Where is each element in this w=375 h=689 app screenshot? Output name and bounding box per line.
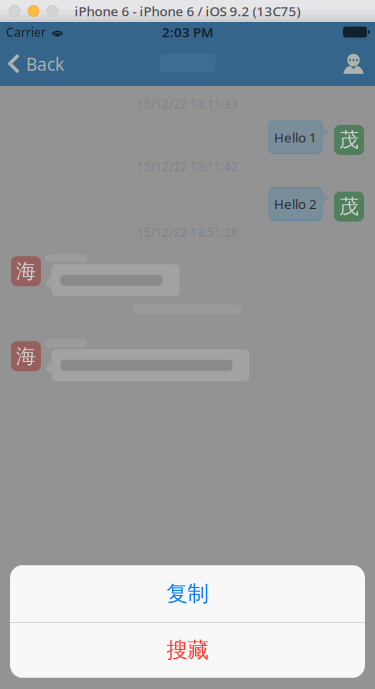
staticText: 15/12/22 13:11:33 [137, 96, 238, 112]
staticText: Hello 2 [274, 195, 317, 213]
staticText: 复制 [166, 581, 208, 607]
staticText: 15/12/22 13:51:28 [137, 224, 238, 240]
button[interactable]: 复制 [10, 565, 365, 622]
button[interactable]: Minimize [28, 5, 39, 16]
staticText: 搜藏 [166, 637, 208, 663]
staticText: iPhone 6 - iPhone 6 / iOS 9.2 (13C75) [74, 2, 300, 20]
staticText: Carrier [6, 24, 46, 40]
button[interactable]: Back [0, 42, 74, 86]
staticText: 2:03 PM [162, 23, 213, 41]
staticText: Back [26, 52, 64, 75]
staticText: 茂 [339, 128, 359, 152]
staticText: Hello 1 [274, 128, 317, 146]
button[interactable]: 搜藏 [10, 623, 365, 678]
button[interactable]: Contact info [331, 42, 375, 86]
staticText: 海 [16, 259, 36, 283]
button[interactable]: Close [9, 5, 20, 16]
staticText: 15/12/22 13:11:42 [137, 159, 238, 174]
staticText: 茂 [339, 194, 359, 219]
staticText: 海 [16, 344, 36, 368]
button[interactable]: Zoom [47, 5, 58, 16]
